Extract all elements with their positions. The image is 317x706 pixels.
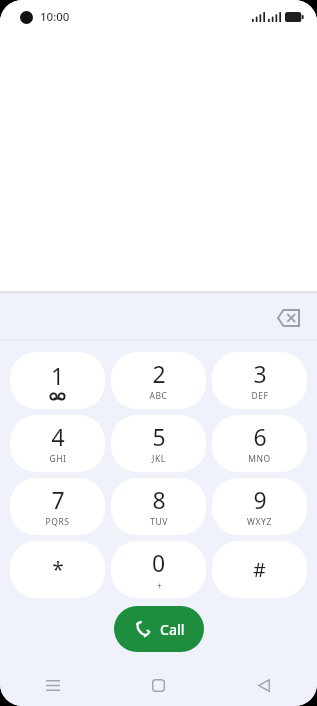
staticText: 8: [152, 484, 166, 515]
button[interactable]: Call: [114, 606, 204, 652]
button[interactable]: 7: [10, 478, 105, 535]
staticText: TUV: [150, 516, 168, 528]
button[interactable]: 4: [10, 415, 105, 472]
staticText: 4: [51, 421, 65, 452]
staticText: 0: [152, 547, 166, 578]
staticText: ABC: [149, 390, 168, 402]
staticText: 9: [253, 484, 267, 515]
staticText: PQRS: [45, 516, 70, 528]
button[interactable]: #: [212, 541, 307, 598]
button[interactable]: 6: [212, 415, 307, 472]
staticText: 5: [152, 421, 166, 452]
staticText: Call: [160, 620, 185, 639]
staticText: 3: [253, 358, 267, 389]
button[interactable]: 5: [111, 415, 206, 472]
staticText: GHI: [49, 453, 67, 465]
staticText: 10:00: [40, 9, 70, 25]
staticText: #: [253, 556, 266, 583]
staticText: MNO: [248, 453, 271, 465]
button[interactable]: Home: [105, 665, 211, 706]
button[interactable]: Back: [211, 665, 317, 706]
button[interactable]: 0: [111, 541, 206, 598]
staticText: JKL: [152, 453, 166, 465]
button[interactable]: 8: [111, 478, 206, 535]
button[interactable]: *: [10, 541, 105, 598]
staticText: +: [157, 580, 162, 591]
button[interactable]: Backspace: [269, 299, 307, 337]
staticText: *: [52, 555, 64, 584]
staticText: DEF: [251, 390, 269, 402]
button[interactable]: 2: [111, 352, 206, 409]
staticText: 6: [253, 421, 267, 452]
button[interactable]: 9: [212, 478, 307, 535]
staticText: 7: [51, 484, 65, 515]
staticText: WXYZ: [247, 516, 272, 528]
staticText: 1: [51, 360, 65, 391]
button[interactable]: 1: [10, 352, 105, 409]
staticText: 2: [152, 358, 166, 389]
button[interactable]: 3: [212, 352, 307, 409]
button[interactable]: Recent apps: [0, 665, 105, 706]
